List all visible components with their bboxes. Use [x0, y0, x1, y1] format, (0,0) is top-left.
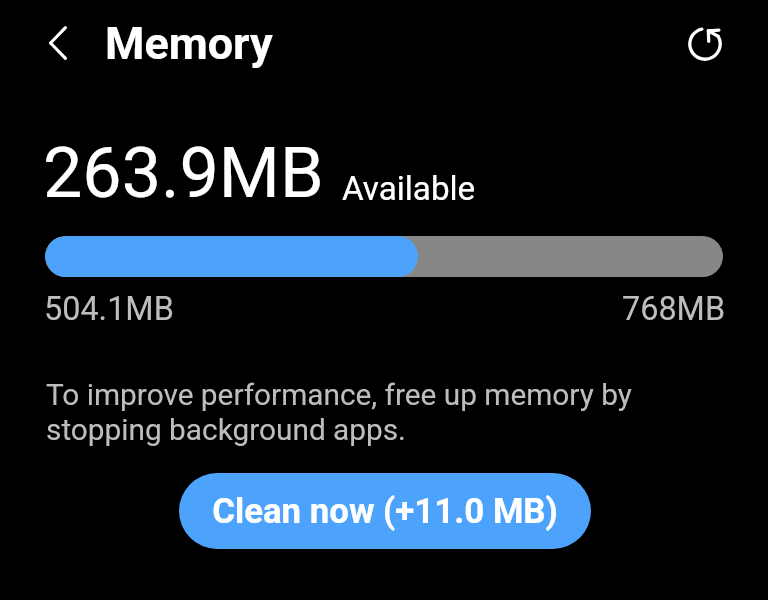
staticText: 768MB	[622, 290, 726, 328]
button[interactable]: Back	[29, 14, 87, 72]
staticText: Clean now (+11.0 MB)	[212, 491, 558, 532]
staticText: Memory	[105, 17, 273, 70]
staticText: 504.1MB	[44, 290, 174, 328]
staticText: Available	[342, 169, 476, 208]
staticText: 263.9MB	[43, 132, 324, 214]
button[interactable]: Refresh	[676, 15, 734, 73]
staticText: To improve performance, free up memory b…	[46, 377, 632, 447]
button[interactable]: Clean now (+11.0 MB)	[179, 473, 591, 549]
